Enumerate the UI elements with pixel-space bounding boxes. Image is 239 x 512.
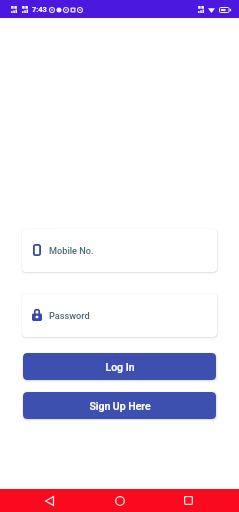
- staticText: Password: [49, 310, 90, 321]
- staticText: Sign Up Here: [89, 400, 151, 412]
- button[interactable]: Mobile No.: [22, 229, 217, 272]
- button[interactable]: Sign Up Here: [23, 392, 216, 419]
- button[interactable]: Recent apps: [174, 489, 203, 512]
- button[interactable]: Password: [22, 294, 217, 337]
- staticText: Log In: [105, 361, 135, 373]
- staticText: 7:43: [32, 5, 47, 14]
- button[interactable]: Back: [35, 489, 64, 512]
- button[interactable]: Log In: [23, 353, 216, 380]
- button[interactable]: Home: [105, 489, 134, 512]
- staticText: Mobile No.: [49, 245, 94, 256]
